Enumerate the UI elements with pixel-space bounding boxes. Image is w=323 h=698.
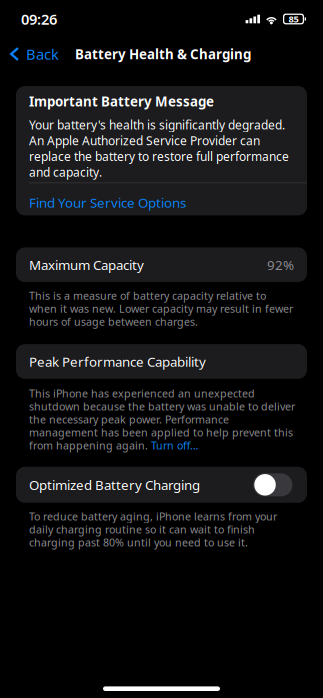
staticText: Maximum Capacity: [29, 256, 144, 274]
staticText: This iPhone has experienced an unexpecte…: [29, 386, 255, 400]
button[interactable]: Back: [0, 41, 67, 67]
staticText: Back: [26, 44, 59, 64]
staticText: Battery Health & Charging: [75, 45, 251, 63]
staticText: Optimized Battery Charging: [29, 476, 200, 494]
staticText: management has been applied to help prev…: [29, 425, 293, 439]
staticText: and capacity.: [29, 164, 102, 180]
staticText: 85: [288, 13, 298, 25]
button[interactable]: Turn off…: [151, 438, 198, 452]
staticText: when it was new. Lower capacity may resu…: [29, 301, 293, 316]
button[interactable]: Optimized Battery Charging: [253, 473, 292, 496]
staticText: To reduce battery aging, iPhone learns f…: [29, 509, 277, 523]
staticText: daily charging routine so it can wait to…: [29, 522, 255, 536]
staticText: An Apple Authorized Service Provider can: [29, 133, 260, 148]
staticText: Important Battery Message: [29, 92, 214, 110]
staticText: from happening again.: [29, 438, 151, 452]
staticText: hours of usage between charges.: [29, 314, 198, 329]
staticText: This is a measure of battery capacity re…: [29, 288, 266, 303]
staticText: Turn off…: [151, 438, 198, 452]
staticText: the necessary peak power. Performance: [29, 412, 229, 426]
staticText: 92%: [267, 256, 294, 274]
button[interactable]: Maximum Capacity: [16, 247, 307, 282]
staticText: Your battery's health is significantly d…: [29, 117, 285, 133]
staticText: Peak Performance Capability: [29, 353, 206, 370]
staticText: 09:26: [21, 9, 57, 29]
staticText: replace the battery to restore full perf…: [29, 148, 289, 164]
button[interactable]: Find Your Service Options: [16, 183, 307, 215]
staticText: shutdown because the battery was unable …: [29, 399, 295, 413]
staticText: charging past 80% until you need to use …: [29, 535, 248, 549]
staticText: Find Your Service Options: [29, 194, 186, 211]
